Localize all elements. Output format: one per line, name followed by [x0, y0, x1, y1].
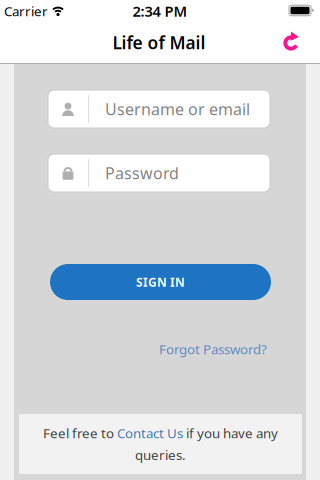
button[interactable]: Contact Us	[117, 424, 183, 442]
staticText: Forgot Password?	[159, 340, 267, 358]
button[interactable]: Username or email	[48, 90, 270, 128]
staticText: Contact Us	[117, 424, 183, 442]
staticText: Password	[105, 162, 179, 184]
staticText: 2:34 PM	[132, 1, 187, 21]
button[interactable]: Forgot Password?	[159, 340, 267, 358]
staticText: Username or email	[105, 98, 250, 120]
button[interactable]: SIGN IN	[50, 264, 271, 300]
button[interactable]	[280, 31, 302, 53]
staticText: Feel free to	[43, 424, 117, 442]
staticText: SIGN IN	[136, 274, 185, 290]
staticText: Carrier	[4, 2, 48, 20]
staticText: queries.	[135, 446, 186, 464]
button[interactable]: Password	[48, 154, 270, 192]
staticText: Life of Mail	[112, 31, 205, 54]
staticText: if you have any	[183, 424, 278, 442]
